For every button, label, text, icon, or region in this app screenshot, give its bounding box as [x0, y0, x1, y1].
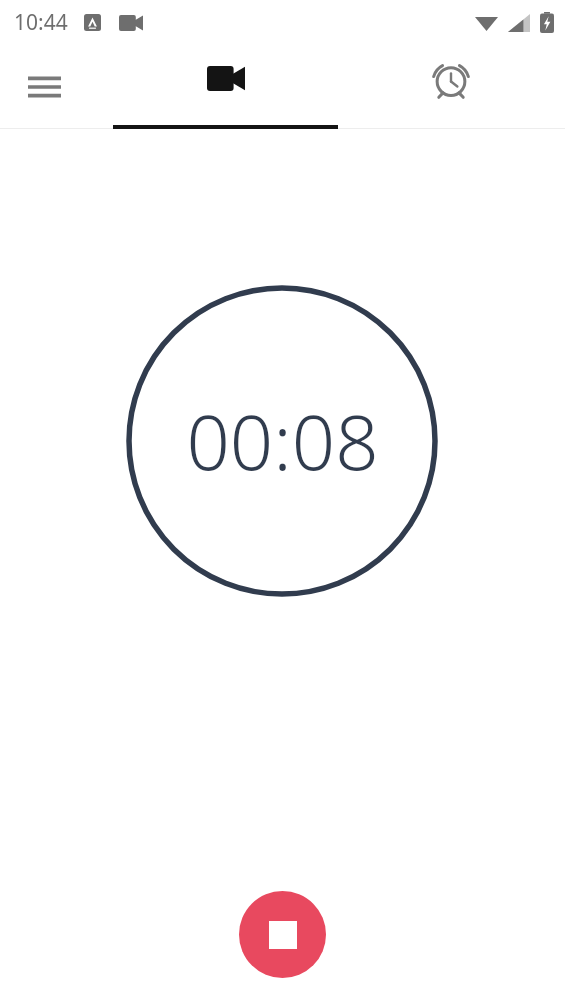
- button[interactable]: Alarm: [338, 44, 563, 129]
- staticText: 00:08: [186, 389, 379, 493]
- staticText: 10:44: [14, 8, 68, 37]
- button[interactable]: Stop recording: [239, 891, 326, 978]
- button[interactable]: Menu: [10, 53, 78, 121]
- button[interactable]: Video: [113, 44, 338, 129]
